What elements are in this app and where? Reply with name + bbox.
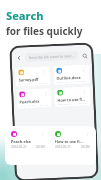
staticText: How to use fi... <box>55 139 83 144</box>
button[interactable]: More options <box>40 132 45 137</box>
staticText: How to use fi... <box>57 97 86 103</box>
staticText: for files quickly <box>6 24 83 38</box>
staticText: Peach.xlsx <box>19 99 40 104</box>
button[interactable]: Search <box>80 51 89 60</box>
staticText: Search <box>6 8 44 23</box>
staticText: 2024-05-21 <box>58 103 74 105</box>
button[interactable]: Describe file name to search <box>24 51 79 62</box>
staticText: 2024-05-21 <box>57 81 73 83</box>
button[interactable]: More options <box>81 68 86 73</box>
staticText: Survey.pdf <box>18 77 39 82</box>
button[interactable]: More options <box>85 132 90 137</box>
button[interactable]: More options <box>8 129 48 162</box>
staticText: 20.3M <box>78 80 87 82</box>
button[interactable]: More options <box>52 129 93 162</box>
staticText: 2024-05-21 <box>19 83 35 84</box>
button[interactable]: More options <box>42 69 47 74</box>
staticText: 2024-05-21 <box>55 145 71 149</box>
staticText: 20.3M <box>36 145 45 149</box>
staticText: 2024-05-21 <box>11 145 27 149</box>
staticText: 2024-05-21 <box>20 105 36 106</box>
staticText: Outline.docx <box>56 75 82 81</box>
button[interactable]: More options <box>54 86 91 107</box>
button[interactable]: More options <box>15 66 51 87</box>
staticText: 20.3M <box>81 145 90 149</box>
staticText: 20.3M <box>40 104 49 106</box>
staticText: 20.3M <box>39 82 48 84</box>
button[interactable]: More options <box>82 89 87 95</box>
button[interactable]: More options <box>53 64 90 85</box>
staticText: Describe file name to search <box>28 53 75 60</box>
button[interactable]: Back <box>14 53 24 63</box>
staticText: Peach.else <box>11 139 31 144</box>
button[interactable]: More options <box>16 88 52 109</box>
staticText: 20.3M <box>79 102 88 104</box>
button[interactable]: More options <box>43 91 48 96</box>
